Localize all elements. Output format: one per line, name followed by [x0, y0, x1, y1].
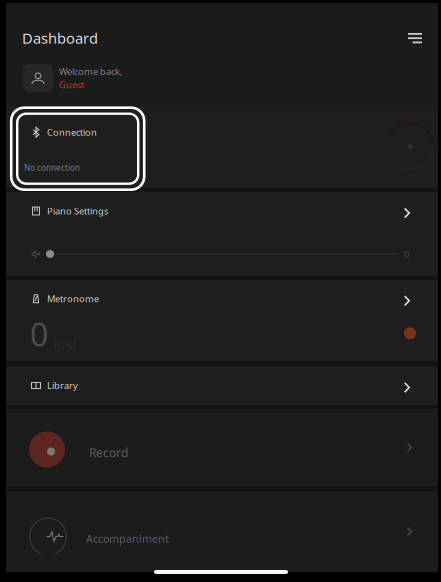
button[interactable]: Menu: [400, 24, 430, 52]
staticText: Accompaniment: [86, 531, 169, 546]
staticText: Piano Settings: [47, 205, 108, 217]
button[interactable]: Record: [6, 409, 438, 486]
button[interactable]: Library: [6, 366, 438, 405]
staticText: Record: [89, 444, 128, 460]
staticText: Connection: [47, 126, 97, 138]
staticText: Guest: [59, 78, 84, 91]
staticText: No connection: [24, 162, 80, 173]
staticText: 0: [404, 248, 409, 260]
button[interactable]: Accompaniment: [6, 491, 438, 572]
staticText: 0: [30, 313, 48, 355]
staticText: Welcome back,: [59, 65, 123, 77]
button[interactable]: Piano Settings: [6, 192, 438, 225]
staticText: BPM: [54, 339, 77, 353]
staticText: Library: [47, 379, 78, 392]
staticText: Dashboard: [22, 28, 98, 48]
staticText: Metronome: [47, 293, 99, 305]
button[interactable]: Metronome: [6, 275, 438, 313]
